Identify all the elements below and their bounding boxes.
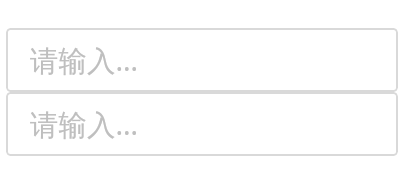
button[interactable]: 请输入… xyxy=(6,92,398,156)
staticText: 请输入… xyxy=(30,41,139,80)
staticText: 请输入… xyxy=(30,105,139,144)
button[interactable]: 请输入… xyxy=(6,28,398,92)
